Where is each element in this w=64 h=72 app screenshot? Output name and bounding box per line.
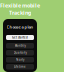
staticText: Lifetime (14, 65, 26, 68)
button[interactable]: Yearly (6, 57, 34, 62)
staticText: Tracking (9, 9, 31, 16)
button[interactable]: Lifetime (6, 64, 34, 69)
staticText: Flexible mobile (0, 2, 40, 9)
button[interactable]: Quarterly (6, 50, 34, 55)
button[interactable]: Monthly (6, 43, 34, 48)
staticText: Choose a plan (6, 24, 33, 30)
staticText: Quarterly (13, 51, 26, 54)
button[interactable]: Get started (6, 35, 34, 40)
staticText: Yearly (16, 58, 24, 61)
staticText: Monthly (14, 44, 25, 47)
staticText: Get started (12, 36, 28, 39)
